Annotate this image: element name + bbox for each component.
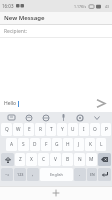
- button[interactable]: C: [38, 153, 49, 166]
- staticText: A: [10, 141, 14, 148]
- button[interactable]: E: [24, 123, 34, 136]
- staticText: 123: [17, 172, 24, 177]
- button[interactable]: H: [63, 138, 73, 151]
- button[interactable]: New Message: [0, 12, 112, 25]
- button[interactable]: R: [35, 123, 45, 136]
- button[interactable]: V: [50, 153, 61, 166]
- staticText: 16:03: [2, 3, 14, 9]
- staticText: EN: [90, 172, 95, 177]
- button[interactable]: ~«: [1, 168, 13, 181]
- staticText: New Message: [4, 14, 45, 22]
- staticText: C: [42, 156, 46, 163]
- staticText: O: [93, 126, 97, 133]
- staticText: Y: [61, 126, 64, 133]
- staticText: L: [100, 141, 103, 148]
- staticText: English: [50, 172, 63, 177]
- button[interactable]: .: [74, 168, 86, 181]
- button[interactable]: [61, 114, 66, 121]
- button[interactable]: Q: [1, 123, 12, 136]
- button[interactable]: Hello: [4, 100, 17, 107]
- staticText: V: [54, 156, 57, 163]
- button[interactable]: K: [85, 138, 95, 151]
- button[interactable]: [96, 99, 106, 108]
- staticText: Recipient:: [4, 28, 28, 35]
- staticText: W: [16, 126, 21, 133]
- button[interactable]: U: [68, 123, 78, 136]
- button[interactable]: D: [30, 138, 40, 151]
- staticText: .: [79, 171, 81, 178]
- staticText: G: [55, 141, 59, 148]
- staticText: J: [78, 141, 80, 148]
- button[interactable]: Z: [15, 153, 25, 166]
- staticText: K: [89, 141, 92, 148]
- button[interactable]: F: [41, 138, 51, 151]
- button[interactable]: [8, 115, 15, 120]
- staticText: ~«: [5, 172, 10, 177]
- staticText: R: [39, 126, 42, 133]
- button[interactable]: ,: [27, 168, 39, 181]
- staticText: Z: [19, 156, 22, 163]
- button[interactable]: L: [96, 138, 106, 151]
- staticText: T: [50, 126, 53, 133]
- staticText: M: [89, 156, 94, 163]
- button[interactable]: [1, 153, 14, 166]
- button[interactable]: W: [13, 123, 23, 136]
- staticText: 1.17K/s: [74, 4, 87, 9]
- staticText: Q: [5, 126, 9, 133]
- staticText: U: [71, 126, 75, 133]
- staticText: E: [28, 126, 31, 133]
- button[interactable]: [98, 153, 111, 166]
- button[interactable]: N: [74, 153, 85, 166]
- button[interactable]: P: [101, 123, 111, 136]
- button[interactable]: I: [79, 123, 89, 136]
- staticText: H: [66, 141, 70, 148]
- staticText: I: [83, 126, 85, 133]
- staticText: D: [33, 141, 37, 148]
- button[interactable]: O: [90, 123, 100, 136]
- button[interactable]: English: [40, 168, 73, 181]
- button[interactable]: [53, 190, 59, 196]
- button[interactable]: T: [46, 123, 56, 136]
- staticText: ,: [32, 171, 34, 178]
- button[interactable]: Y: [57, 123, 67, 136]
- staticText: P: [105, 126, 108, 133]
- button[interactable]: S: [18, 138, 29, 151]
- button[interactable]: [26, 115, 32, 121]
- staticText: N: [78, 156, 82, 163]
- button[interactable]: [77, 115, 83, 121]
- staticText: X: [30, 156, 33, 163]
- button[interactable]: Recipient:: [0, 25, 112, 38]
- staticText: F: [45, 141, 48, 148]
- staticText: S: [22, 141, 25, 148]
- staticText: 43: [105, 4, 110, 9]
- button[interactable]: A: [6, 138, 17, 151]
- button[interactable]: [94, 116, 100, 120]
- button[interactable]: 123: [14, 168, 26, 181]
- button[interactable]: X: [26, 153, 37, 166]
- button[interactable]: B: [62, 153, 73, 166]
- button[interactable]: G: [52, 138, 62, 151]
- button[interactable]: J: [74, 138, 84, 151]
- button[interactable]: [98, 168, 111, 181]
- button[interactable]: [43, 115, 49, 121]
- button[interactable]: EN: [87, 168, 97, 181]
- button[interactable]: M: [86, 153, 97, 166]
- staticText: B: [66, 156, 70, 163]
